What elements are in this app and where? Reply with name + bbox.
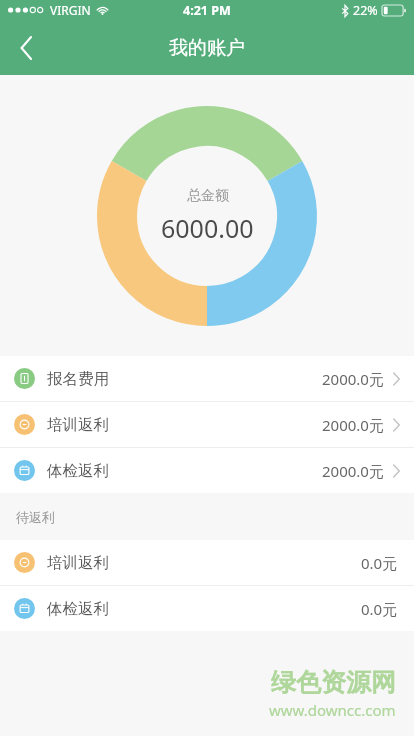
staticText: 4:21 PM xyxy=(183,2,231,19)
staticText: 0.0元 xyxy=(361,599,398,619)
staticText: 总金额 xyxy=(187,187,229,205)
button[interactable]: 体检返利 xyxy=(0,586,414,631)
staticText: 2000.0元 xyxy=(322,461,384,481)
staticText: 22% xyxy=(353,2,378,19)
staticText: www.downcc.com xyxy=(269,700,396,720)
staticText: 绿色资源网 xyxy=(271,667,396,698)
staticText: 体检返利 xyxy=(47,599,109,619)
staticText: 0.0元 xyxy=(361,553,398,573)
button[interactable]: Back xyxy=(0,20,52,75)
staticText: 体检返利 xyxy=(47,461,109,481)
staticText: 培训返利 xyxy=(47,553,109,573)
button[interactable]: 培训返利 xyxy=(0,540,414,585)
staticText: VIRGIN xyxy=(50,2,91,18)
button[interactable]: 体检返利 xyxy=(0,448,414,493)
staticText: 我的账户 xyxy=(169,36,245,60)
staticText: 待返利 xyxy=(16,509,55,525)
staticText: 2000.0元 xyxy=(322,415,384,435)
button[interactable]: 报名费用 xyxy=(0,356,414,401)
staticText: 报名费用 xyxy=(47,369,109,389)
staticText: 6000.00 xyxy=(161,211,254,245)
staticText: 2000.0元 xyxy=(322,369,384,389)
staticText: 培训返利 xyxy=(47,415,109,435)
button[interactable]: 培训返利 xyxy=(0,402,414,447)
